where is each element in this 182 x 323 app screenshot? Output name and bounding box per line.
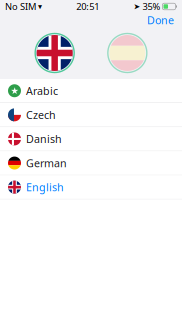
staticText: ➤: [133, 2, 140, 11]
staticText: Done: [147, 13, 174, 27]
button[interactable]: ★: [0, 79, 182, 103]
button[interactable]: Spanish: [109, 35, 145, 71]
button[interactable]: Czech: [0, 103, 182, 127]
staticText: ★: [10, 85, 18, 96]
staticText: No SIM: [5, 0, 36, 13]
staticText: 35%: [142, 0, 160, 13]
button[interactable]: English: [0, 175, 182, 199]
staticText: 20:51: [76, 0, 99, 13]
button[interactable]: German: [0, 151, 182, 175]
staticText: Czech: [26, 108, 56, 122]
button[interactable]: Done: [147, 11, 182, 29]
button[interactable]: English, selected: [37, 35, 73, 71]
staticText: Danish: [26, 132, 62, 146]
staticText: English: [26, 180, 64, 194]
staticText: German: [26, 156, 67, 170]
button[interactable]: Danish: [0, 127, 182, 151]
staticText: Arabic: [26, 84, 58, 98]
staticText: ▾: [38, 2, 42, 11]
